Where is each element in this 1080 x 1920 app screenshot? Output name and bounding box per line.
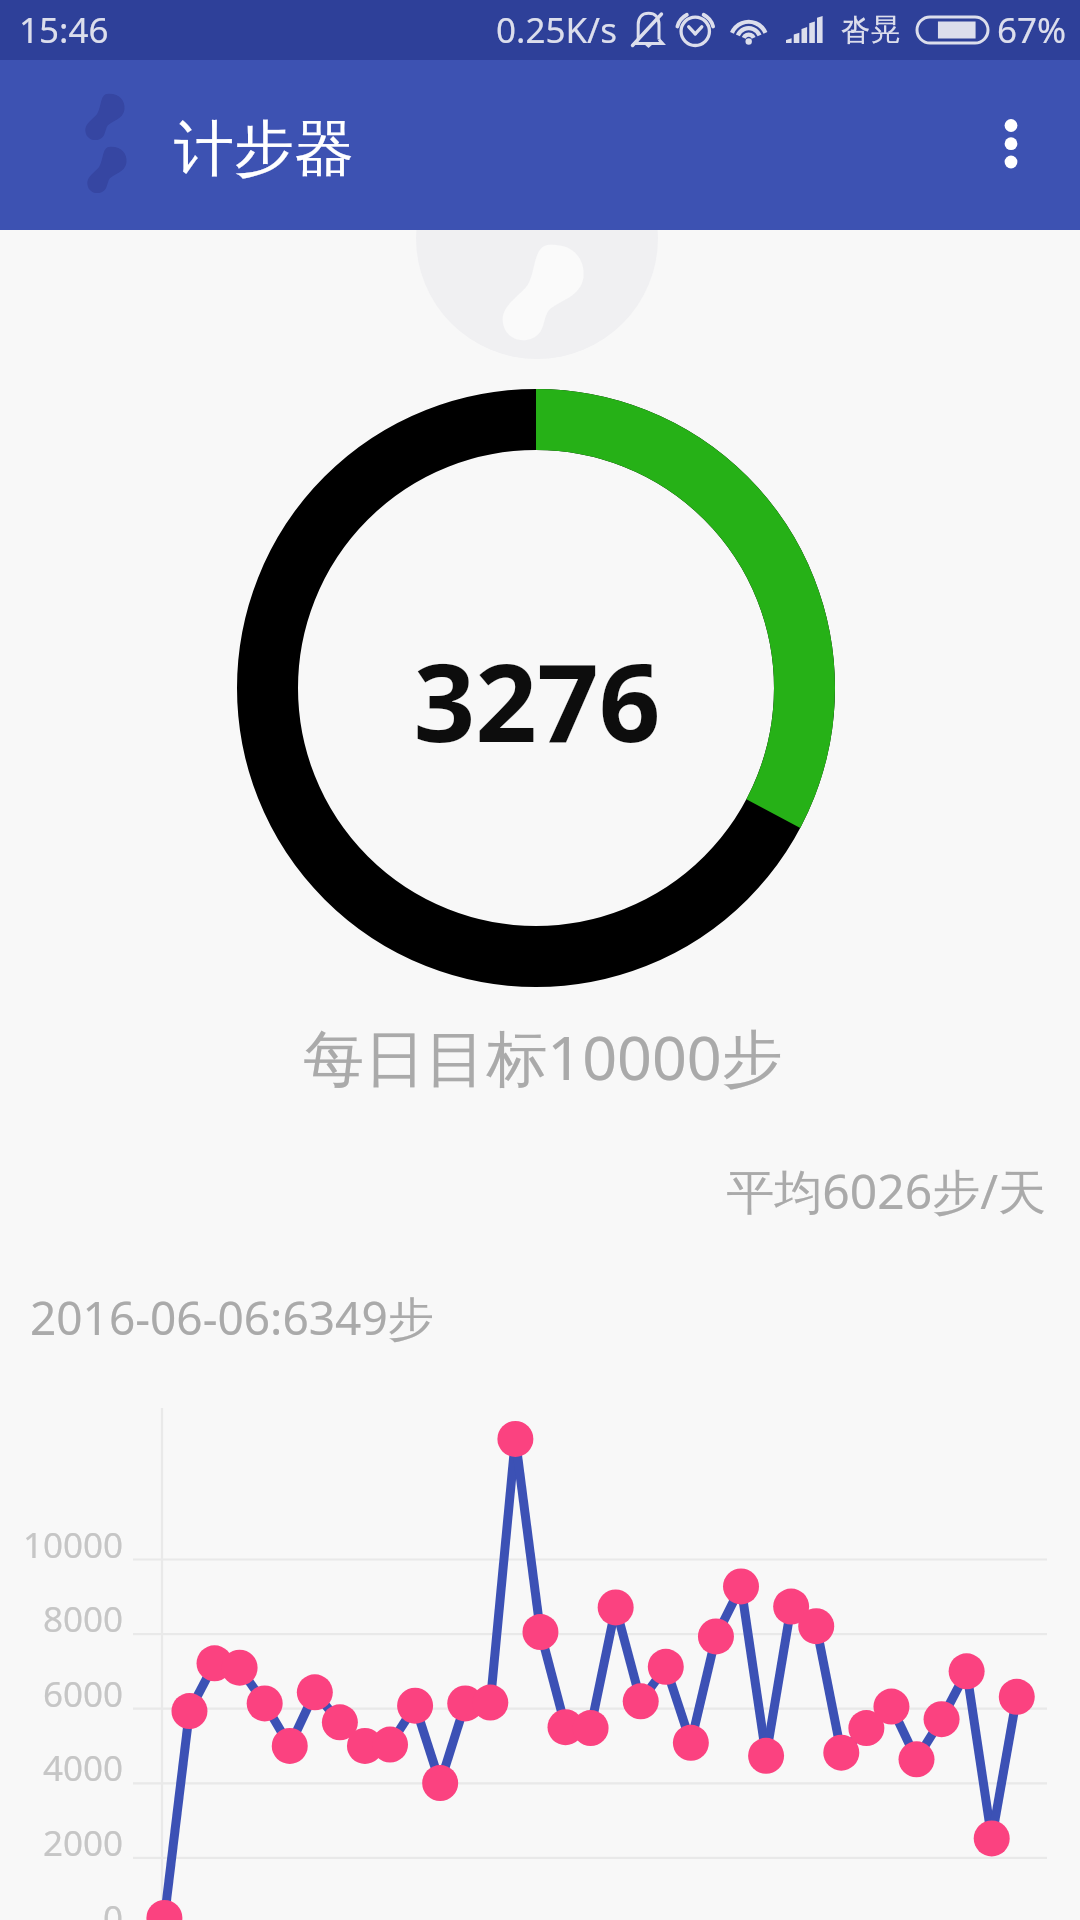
button[interactable]: Today's steps 3276 of 10000 <box>237 389 835 987</box>
staticText: 6000 <box>0 1670 123 1718</box>
staticText: 10000 <box>0 1521 123 1569</box>
staticText: 0 <box>0 1894 123 1920</box>
staticText: 每日目标10000步 <box>6 1015 1080 1098</box>
staticText: 沓晃 <box>841 11 901 49</box>
staticText: 2000 <box>0 1819 123 1867</box>
button[interactable]: More options <box>962 60 1080 230</box>
staticText: 0.25K/s <box>496 6 617 54</box>
staticText: 计步器 <box>174 111 354 187</box>
staticText: 67% <box>997 6 1067 54</box>
staticText: 2016-06-06:6349步 <box>30 1286 434 1349</box>
staticText: 15:46 <box>19 6 109 54</box>
staticText: 4000 <box>0 1744 123 1792</box>
staticText: 8000 <box>0 1595 123 1643</box>
staticText: 平均6026步/天 <box>0 1158 1046 1224</box>
staticText: 3276 <box>0 627 1074 774</box>
